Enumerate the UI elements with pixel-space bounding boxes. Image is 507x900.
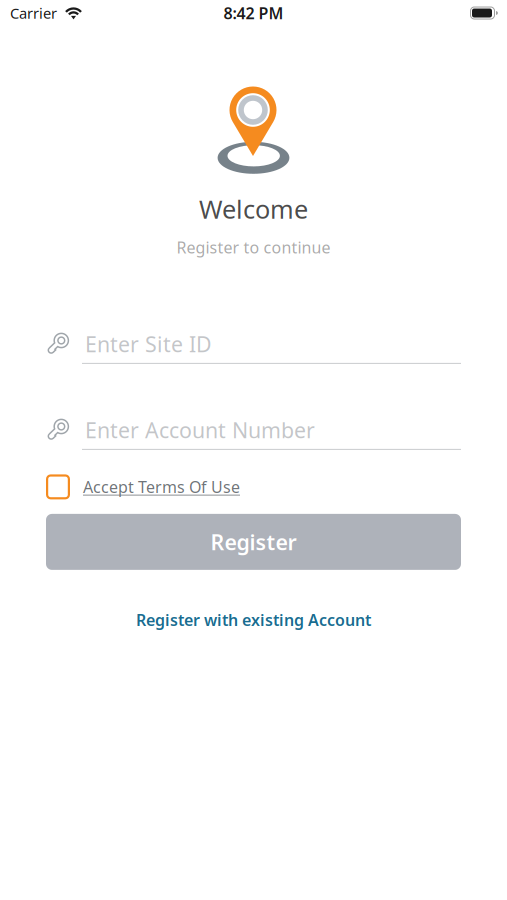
staticText: Register xyxy=(210,528,296,556)
staticText: 8:42 PM xyxy=(223,2,283,24)
button[interactable]: Accept Terms Of Use xyxy=(46,473,461,501)
staticText: Enter Account Number xyxy=(85,416,315,444)
button[interactable]: Register with existing Account xyxy=(46,608,461,632)
staticText: Register with existing Account xyxy=(136,609,371,630)
button[interactable]: Register xyxy=(46,514,461,570)
staticText: Welcome xyxy=(199,192,308,226)
staticText: Carrier xyxy=(10,3,57,23)
staticText: Register to continue xyxy=(176,237,330,258)
staticText: Enter Site ID xyxy=(85,330,212,358)
staticText: Accept Terms Of Use xyxy=(83,476,240,497)
